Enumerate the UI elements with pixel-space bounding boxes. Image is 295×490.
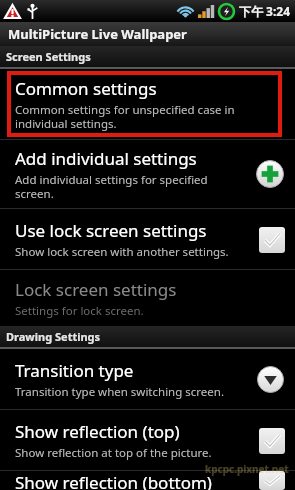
button[interactable]: Toggle checkbox — [258, 226, 285, 253]
staticText: Add individual settings for specified sc… — [15, 172, 208, 201]
staticText: Add individual settings — [15, 147, 197, 170]
staticText: Show reflection (top) — [15, 420, 180, 443]
button[interactable]: Show reflection (top) — [0, 410, 295, 470]
staticText: Common settings — [15, 77, 157, 100]
button[interactable]: Open transition type list — [256, 365, 285, 394]
button[interactable]: Lock screen settings — [0, 270, 295, 326]
button[interactable]: Add individual settings — [255, 159, 285, 189]
staticText: Lock screen settings — [15, 278, 177, 301]
staticText: Drawing Settings — [6, 329, 101, 344]
staticText: 下午 3:24 — [239, 3, 291, 19]
staticText: Screen Settings — [6, 49, 91, 64]
button[interactable]: Toggle checkbox — [258, 427, 285, 454]
button[interactable]: Use lock screen settings — [0, 209, 295, 269]
staticText: Show reflection (bottom) — [15, 471, 212, 490]
staticText: Common settings for unspecified case in … — [15, 102, 235, 131]
button[interactable]: Common settings — [0, 69, 295, 139]
staticText: Transition type when switching screen. — [15, 384, 224, 400]
button[interactable]: Add individual settings — [0, 140, 295, 208]
staticText: Transition type — [15, 359, 134, 382]
button[interactable]: Toggle checkbox — [258, 471, 285, 490]
staticText: Settings for lock screen. — [15, 303, 144, 319]
staticText: Use lock screen settings — [15, 219, 207, 242]
staticText: Show lock screen with another settings. — [15, 244, 229, 260]
staticText: kpcpc.pixnet.net — [205, 462, 289, 476]
button[interactable]: Transition type — [0, 349, 295, 409]
staticText: MultiPicture Live Wallpaper — [8, 25, 187, 43]
staticText: Show reflection at top of the picture. — [15, 445, 212, 461]
button[interactable]: Show reflection (bottom) — [0, 471, 295, 490]
